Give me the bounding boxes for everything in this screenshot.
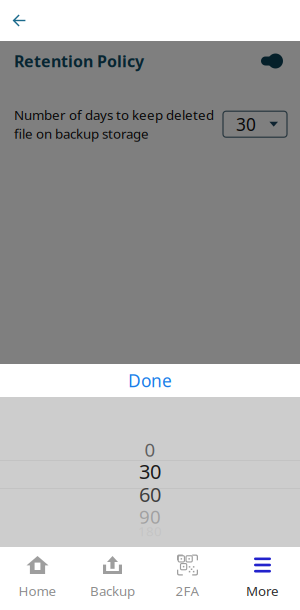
staticText: Backup <box>90 582 135 600</box>
button[interactable]: Home <box>0 547 75 610</box>
button[interactable]: Backup <box>75 547 150 610</box>
button[interactable]: 2FA <box>150 547 225 610</box>
button[interactable]: Retention policy enabled <box>260 50 287 72</box>
staticText: Number of days to keep deleted <box>14 106 214 124</box>
staticText: 30 <box>139 458 161 485</box>
button[interactable]: Back <box>0 0 43 41</box>
staticText: 90 <box>139 504 161 529</box>
button[interactable]: Done <box>0 364 300 397</box>
staticText: 60 <box>139 481 161 508</box>
staticText: Done <box>128 369 172 392</box>
staticText: file on backup storage <box>14 125 149 142</box>
staticText: 0 <box>144 437 155 462</box>
staticText: 30 <box>236 113 256 136</box>
staticText: More <box>246 582 279 600</box>
staticText: 2FA <box>175 582 199 600</box>
staticText: 180 <box>138 522 162 540</box>
button[interactable]: 30 <box>223 111 287 137</box>
button[interactable]: More <box>225 547 300 610</box>
staticText: Home <box>18 582 56 600</box>
staticText: Retention Policy <box>14 50 144 72</box>
